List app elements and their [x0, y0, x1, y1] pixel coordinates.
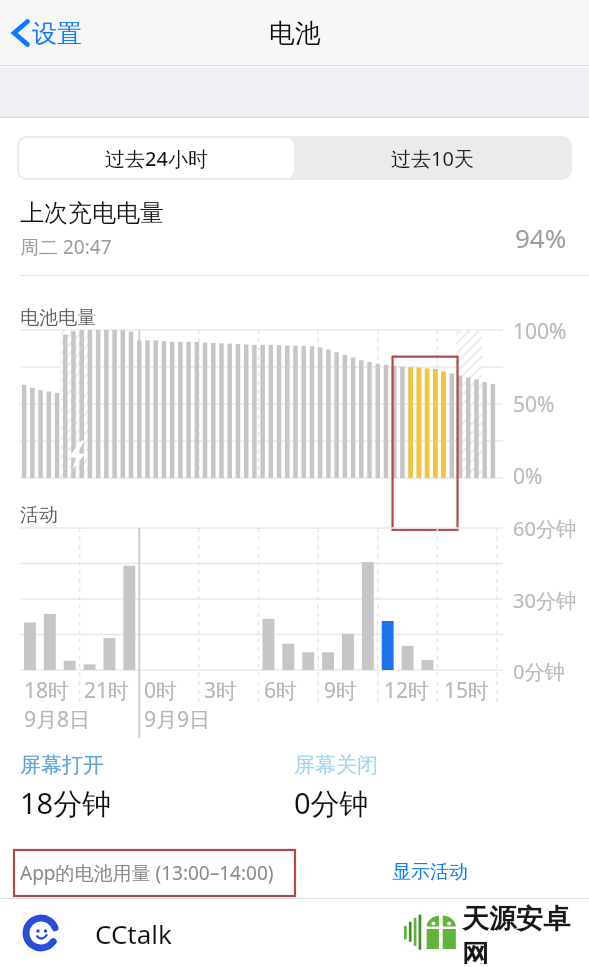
staticText: 9月9日	[144, 705, 211, 734]
button[interactable]: CCtalk	[0, 899, 589, 967]
button[interactable]: 显示活动	[392, 860, 468, 884]
staticText: 3时	[204, 676, 238, 705]
staticText: 60分钟	[513, 515, 576, 542]
button[interactable]: App的电池用量 (13:00–14:00)	[20, 860, 274, 886]
button[interactable]: 过去24小时	[19, 138, 294, 178]
staticText: 50%	[513, 390, 555, 419]
staticText: 0分钟	[513, 658, 565, 685]
staticText: 活动	[20, 503, 58, 527]
staticText: 设置	[32, 18, 82, 49]
staticText: 6时	[264, 676, 298, 705]
staticText: CCtalk	[95, 916, 172, 951]
staticText: 过去10天	[391, 145, 474, 172]
staticText: 周二 20:47	[20, 234, 112, 260]
staticText: 21时	[84, 676, 130, 705]
staticText: 9月8日	[24, 705, 91, 734]
staticText: App的电池用量 (13:00–14:00)	[20, 860, 274, 886]
staticText: 12时	[384, 676, 430, 705]
staticText: 18时	[24, 676, 70, 705]
staticText: 0%	[513, 462, 543, 491]
button[interactable]: 屏幕关闭	[294, 752, 524, 823]
staticText: 0时	[144, 676, 178, 705]
staticText: 0分钟	[294, 783, 369, 823]
staticText: 天源安卓网	[462, 902, 589, 964]
staticText: 9时	[324, 676, 358, 705]
staticText: 18分钟	[20, 783, 112, 823]
staticText: 屏幕关闭	[294, 752, 378, 778]
staticText: 30分钟	[513, 587, 576, 614]
staticText: 电池	[269, 17, 321, 50]
button[interactable]: 设置	[4, 9, 90, 57]
staticText: 15时	[444, 676, 490, 705]
staticText: 94%	[515, 220, 567, 255]
staticText: 显示活动	[392, 860, 468, 884]
button[interactable]: 屏幕打开	[20, 752, 250, 823]
staticText: 上次充电电量	[20, 198, 164, 228]
staticText: 过去24小时	[105, 145, 208, 172]
button[interactable]: 上次充电电量	[0, 198, 589, 274]
button[interactable]: 过去10天	[294, 138, 570, 178]
staticText: 100%	[513, 317, 567, 346]
staticText: 电池电量	[20, 306, 96, 330]
staticText: 屏幕打开	[20, 752, 104, 778]
